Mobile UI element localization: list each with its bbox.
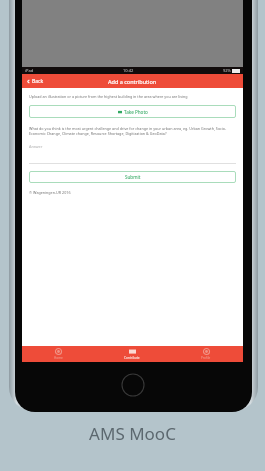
button[interactable]: Contribute	[95, 346, 169, 362]
staticText: Profile	[201, 356, 211, 360]
staticText: Contribute	[124, 356, 140, 360]
staticText: Add a contribution	[108, 78, 157, 85]
staticText: Submit	[125, 174, 141, 180]
staticText: Answer	[29, 144, 43, 149]
staticText: 10:42	[123, 68, 134, 73]
staticText: 92%	[223, 68, 231, 73]
staticText: Upload an illustration or a picture from…	[29, 94, 188, 99]
button[interactable]: Take Photo	[29, 105, 236, 118]
button[interactable]: Back	[22, 74, 48, 88]
staticText: Back	[32, 78, 44, 85]
button[interactable]: Home	[22, 346, 95, 362]
button[interactable]: Answer	[29, 144, 236, 164]
staticText: Home	[54, 356, 63, 360]
staticText: Take Photo	[124, 109, 148, 115]
staticText: iPad	[25, 68, 34, 73]
staticText: © Wageningen-UR 2016	[29, 190, 71, 195]
staticText: What do you think is the most urgent cha…	[29, 126, 236, 136]
staticText: AMS MooC	[0, 422, 265, 445]
button[interactable]: Profile	[169, 346, 243, 362]
button[interactable]: Submit	[29, 171, 236, 183]
other: Home button	[121, 373, 145, 397]
